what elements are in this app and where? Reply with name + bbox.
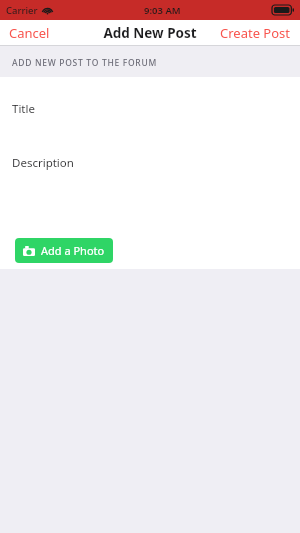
staticText: Carrier (6, 4, 38, 17)
other: Camera (23, 246, 35, 256)
staticText: 9:03 AM (144, 4, 181, 17)
staticText: Cancel (9, 24, 50, 42)
staticText: Description (12, 155, 74, 171)
button[interactable]: Camera (15, 238, 113, 263)
staticText: ADD NEW POST TO THE FORUM (12, 57, 157, 69)
staticText: Add New Post (103, 24, 197, 42)
button[interactable]: Create Post (211, 20, 300, 46)
staticText: Add a Photo (41, 243, 105, 258)
staticText: Title (12, 101, 35, 117)
button[interactable]: Cancel (0, 20, 59, 46)
staticText: Create Post (220, 24, 291, 42)
